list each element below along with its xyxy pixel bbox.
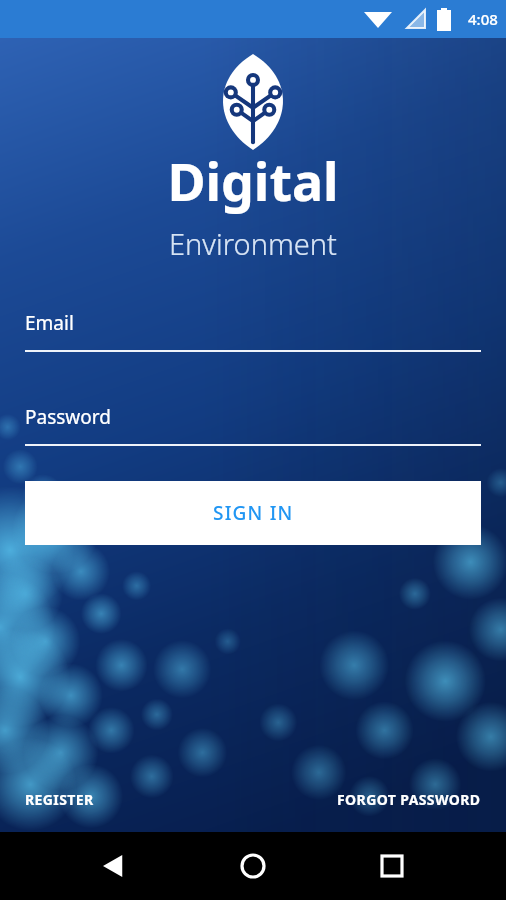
staticText: Environment <box>169 224 337 263</box>
button[interactable]: SIGN IN <box>25 481 481 545</box>
staticText: REGISTER <box>25 790 94 809</box>
staticText: SIGN IN <box>213 500 294 526</box>
button[interactable]: Password <box>25 404 481 446</box>
button[interactable]: Back <box>90 842 138 890</box>
button[interactable]: Email <box>25 310 481 352</box>
button[interactable]: Home <box>229 842 277 890</box>
staticText: Password <box>25 404 111 430</box>
button[interactable]: Recent apps <box>368 842 416 890</box>
staticText: Email <box>25 310 74 336</box>
staticText: Digital <box>167 145 339 216</box>
button[interactable]: REGISTER <box>25 790 94 809</box>
staticText: FORGOT PASSWORD <box>337 790 481 809</box>
staticText: 4:08 <box>468 9 498 29</box>
button[interactable]: FORGOT PASSWORD <box>337 790 481 809</box>
